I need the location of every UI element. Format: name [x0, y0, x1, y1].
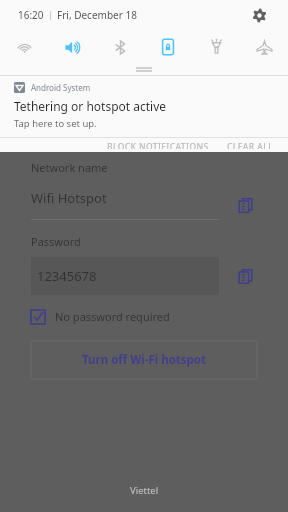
- button[interactable]: No password required: [31, 309, 170, 324]
- button[interactable]: BLOCK NOTIFICATIONS: [101, 138, 215, 152]
- staticText: Android System: [31, 82, 91, 93]
- button[interactable]: 12345678: [31, 257, 219, 295]
- staticText: Viettel: [130, 484, 159, 497]
- button[interactable]: Android System: [0, 76, 288, 137]
- staticText: 12345678: [37, 267, 97, 285]
- staticText: Turn off Wi-Fi hotspot: [82, 352, 207, 368]
- button[interactable]: Turn off Wi-Fi hotspot: [31, 341, 257, 379]
- button[interactable]: Wi-Fi: [0, 30, 48, 64]
- staticText: Tethering or hotspot active: [14, 98, 167, 114]
- button[interactable]: Copy password: [233, 264, 257, 288]
- staticText: BLOCK NOTIFICATIONS: [107, 141, 209, 149]
- staticText: CLEAR ALL: [227, 141, 274, 149]
- button[interactable]: Copy network name: [233, 193, 257, 217]
- staticText: Fri, December 18: [57, 8, 137, 22]
- button[interactable]: CLEAR ALL: [221, 138, 280, 152]
- button[interactable]: Bluetooth: [96, 30, 144, 64]
- staticText: Tap here to set up.: [14, 117, 97, 130]
- button[interactable]: Settings: [248, 4, 270, 26]
- staticText: Wifi Hotspot: [31, 189, 107, 207]
- staticText: No password required: [55, 309, 170, 324]
- button[interactable]: Airplane mode: [240, 30, 288, 64]
- button[interactable]: Sound: [48, 30, 96, 64]
- staticText: Password: [31, 234, 81, 249]
- staticText: 16:20: [18, 8, 44, 22]
- staticText: Network name: [31, 160, 108, 175]
- button[interactable]: Auto rotate: [144, 30, 192, 64]
- button[interactable]: Flashlight: [192, 30, 240, 64]
